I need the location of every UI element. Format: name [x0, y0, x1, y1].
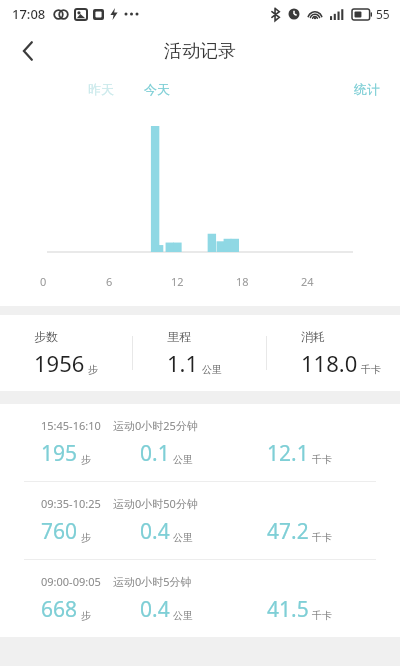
button[interactable]: 昨天	[82, 78, 120, 100]
staticText: 0	[40, 274, 47, 289]
staticText: 1.1	[167, 348, 199, 378]
staticText: 公里	[173, 453, 193, 466]
staticText: 昨天	[88, 81, 114, 97]
button[interactable]: 步数	[0, 329, 132, 378]
staticText: 公里	[202, 363, 222, 376]
staticText: 1956	[34, 348, 85, 378]
staticText: 12.1	[267, 439, 309, 468]
button[interactable]: Back	[6, 29, 50, 73]
staticText: 17:08	[12, 5, 46, 23]
staticText: 公里	[173, 531, 193, 544]
staticText: 步	[81, 609, 91, 622]
staticText: 步数	[34, 329, 58, 344]
staticText: 09:35-10:25	[41, 496, 101, 511]
button[interactable]: 15:45-16:10	[0, 404, 400, 482]
staticText: 18	[236, 274, 249, 289]
staticText: 千卡	[312, 531, 332, 544]
staticText: 千卡	[312, 453, 332, 466]
staticText: 千卡	[361, 363, 381, 376]
button[interactable]: 消耗	[267, 329, 400, 378]
staticText: 0.1	[140, 439, 170, 468]
staticText: 公里	[173, 609, 193, 622]
staticText: 24	[301, 274, 314, 289]
staticText: 今天	[144, 81, 170, 97]
staticText: 步	[81, 531, 91, 544]
button[interactable]: 里程	[133, 329, 266, 378]
button[interactable]: 09:35-10:25	[0, 482, 400, 560]
staticText: 6	[106, 274, 113, 289]
staticText: 消耗	[301, 329, 325, 344]
staticText: 运动0小时25分钟	[113, 418, 198, 433]
staticText: 195	[41, 439, 78, 468]
staticText: 里程	[167, 329, 191, 344]
staticText: 41.5	[267, 595, 309, 624]
button[interactable]: 09:00-09:05	[0, 560, 400, 637]
staticText: 12	[171, 274, 184, 289]
button[interactable]: 统计	[348, 78, 386, 100]
staticText: 09:00-09:05	[41, 574, 101, 589]
staticText: 运动0小时5分钟	[113, 574, 192, 589]
staticText: 步	[81, 453, 91, 466]
staticText: 千卡	[312, 609, 332, 622]
staticText: 55	[376, 6, 390, 22]
staticText: 步	[88, 363, 98, 376]
staticText: 15:45-16:10	[41, 418, 101, 433]
staticText: 668	[41, 595, 78, 624]
staticText: 0.4	[140, 595, 170, 624]
staticText: 活动记录	[164, 40, 236, 63]
staticText: 统计	[354, 81, 380, 97]
staticText: 0.4	[140, 517, 170, 546]
staticText: 760	[41, 517, 78, 546]
staticText: 47.2	[267, 517, 309, 546]
button[interactable]: 今天	[138, 78, 176, 100]
staticText: 118.0	[301, 348, 358, 378]
staticText: 运动0小时50分钟	[113, 496, 198, 511]
